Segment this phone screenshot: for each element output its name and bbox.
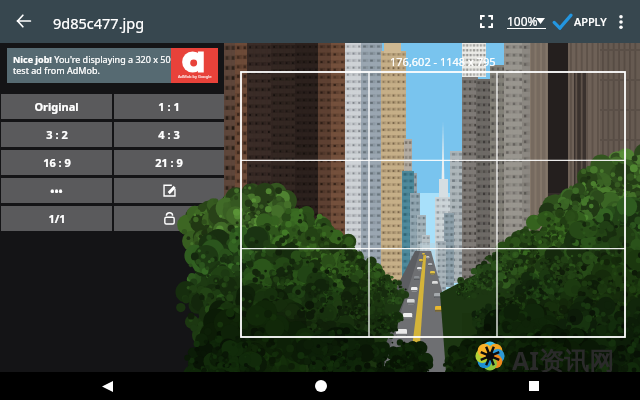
button[interactable]: More options [608,0,634,43]
staticText: 21 : 9 [155,155,183,170]
button[interactable]: Original [1,94,112,119]
staticText: APPLY [574,14,607,29]
staticText: ••• [50,183,63,198]
staticText: AdMob by Google [178,74,212,79]
staticText: 4 : 3 [158,127,180,142]
button[interactable]: Back [0,372,214,400]
button[interactable] [114,206,224,231]
staticText: 9d85c477.jpg [53,13,145,33]
button[interactable]: 3 : 2 [1,122,112,147]
staticText: 176,602 - 1148 x 795 [390,54,496,69]
button[interactable] [114,178,224,203]
button[interactable]: Fit to screen [468,0,504,43]
button[interactable]: 16 : 9 [1,150,112,175]
button[interactable]: 4 : 3 [114,122,224,147]
button[interactable]: Home [214,372,427,400]
button[interactable]: Recents [427,372,640,400]
staticText: Nice job! You're displaying a 320 x 50 t… [13,53,171,77]
button[interactable]: APPLY [553,0,607,43]
button[interactable]: ••• [1,178,112,203]
staticText: 1 : 1 [158,99,180,114]
staticText: 100% [507,13,538,29]
staticText: Original [34,99,79,114]
button[interactable]: 21 : 9 [114,150,224,175]
staticText: AI资讯网 [512,343,615,377]
button[interactable]: 1 : 1 [114,94,224,119]
button[interactable]: Back [7,4,41,38]
staticText: 16 : 9 [43,155,71,170]
button[interactable]: 100% [503,0,549,43]
staticText: 1/1 [48,211,66,226]
button[interactable]: 1/1 [1,206,112,231]
staticText: 3 : 2 [46,127,68,142]
